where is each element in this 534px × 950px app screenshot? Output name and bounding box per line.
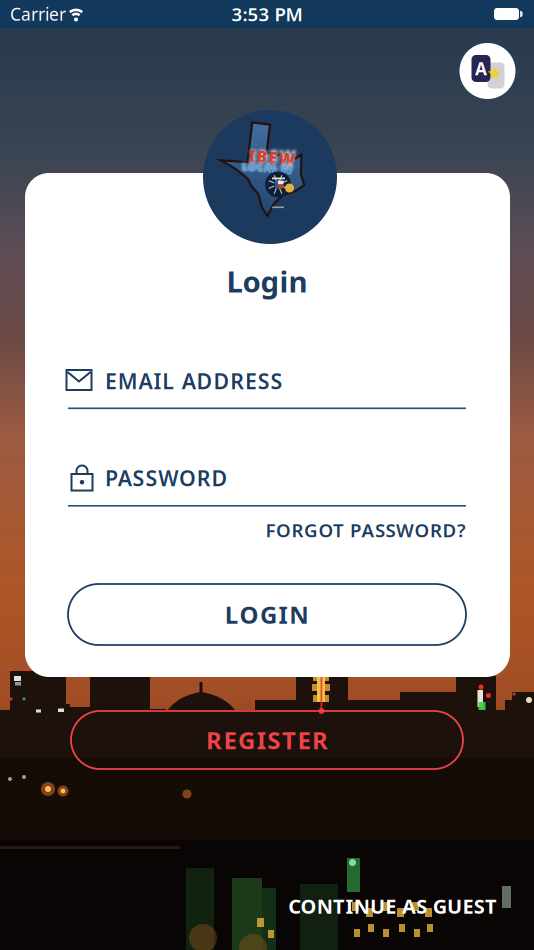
staticText: PASSWORD — [105, 464, 228, 492]
staticText: A — [475, 57, 487, 80]
staticText: LOCAL 60 — [241, 161, 292, 176]
staticText: FORGOT PASSWORD? — [265, 518, 466, 542]
staticText: EMAIL ADDRESS — [105, 367, 283, 395]
button[interactable]: REGISTER — [71, 711, 463, 769]
staticText: REGISTER — [206, 724, 328, 756]
button[interactable]: CONTINUE AS GUEST — [288, 893, 497, 919]
staticText: Carrier — [10, 2, 66, 25]
button[interactable]: LOGIN — [68, 584, 466, 645]
staticText: LOGIN — [225, 599, 309, 630]
staticText: CONTINUE AS GUEST — [288, 893, 497, 919]
button[interactable]: Translate — [459, 43, 515, 99]
button[interactable]: FORGOT PASSWORD? — [265, 518, 466, 542]
staticText: Login — [226, 261, 307, 300]
staticText: IBEW — [248, 146, 295, 168]
staticText: 3:53 PM — [231, 2, 302, 26]
